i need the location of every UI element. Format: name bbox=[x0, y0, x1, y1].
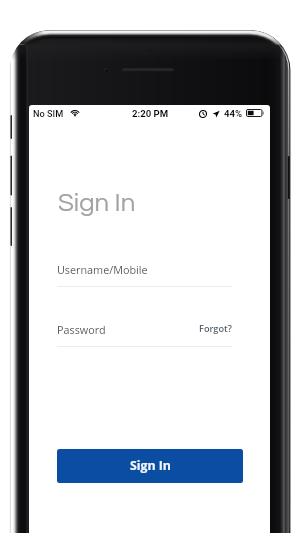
staticText: 2:20 PM bbox=[132, 108, 169, 119]
staticText: No SIM bbox=[33, 108, 64, 119]
staticText: Forgot? bbox=[199, 322, 232, 335]
button[interactable]: Password bbox=[57, 322, 232, 348]
staticText: Sign In bbox=[58, 190, 136, 217]
staticText: 44% bbox=[224, 108, 243, 119]
staticText: Password bbox=[57, 322, 106, 337]
button[interactable]: Sign In bbox=[57, 449, 243, 483]
button[interactable]: Forgot? bbox=[189, 320, 232, 336]
button[interactable]: Username/Mobile bbox=[57, 262, 232, 288]
staticText: Username/Mobile bbox=[57, 262, 148, 277]
staticText: Sign In bbox=[130, 457, 171, 474]
